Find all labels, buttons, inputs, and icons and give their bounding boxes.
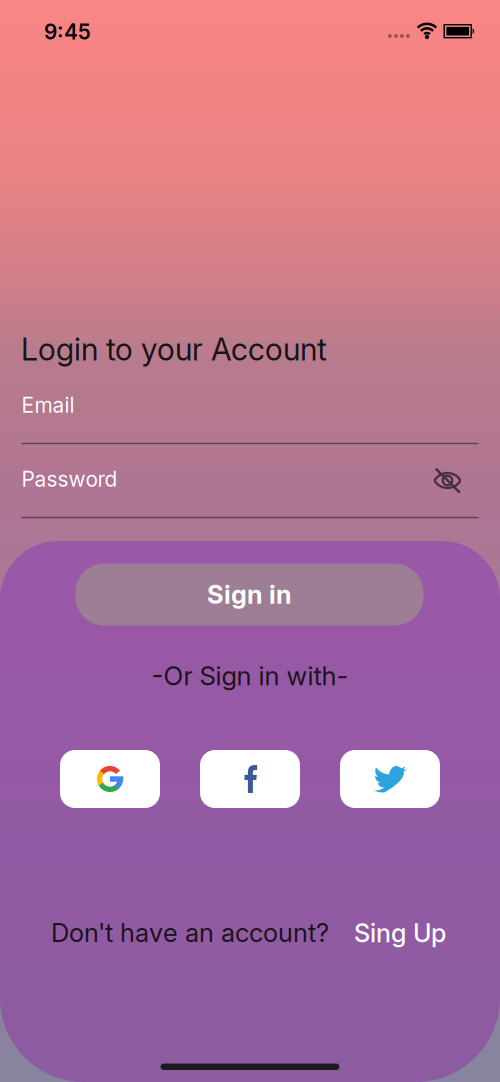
staticText: Login to your Account	[21, 331, 327, 368]
button[interactable]: Show password	[433, 467, 461, 493]
button[interactable]: Email	[21, 392, 478, 444]
staticText: Don't have an account?	[51, 917, 329, 948]
button[interactable]: Sing Up	[354, 918, 446, 948]
staticText: Email	[21, 392, 74, 418]
staticText: Sign in	[207, 579, 292, 610]
staticText: Sing Up	[354, 918, 446, 948]
button[interactable]: Sign in	[75, 563, 423, 625]
button[interactable]: Sign in with Google	[60, 750, 160, 808]
staticText: Password	[21, 466, 117, 492]
button[interactable]: Password	[21, 466, 478, 518]
button[interactable]: Sign in with Twitter	[340, 750, 440, 808]
button[interactable]: Sign in with Facebook	[200, 750, 300, 808]
staticText: 9:45	[44, 19, 91, 44]
staticText: -Or Sign in with-	[151, 660, 348, 691]
